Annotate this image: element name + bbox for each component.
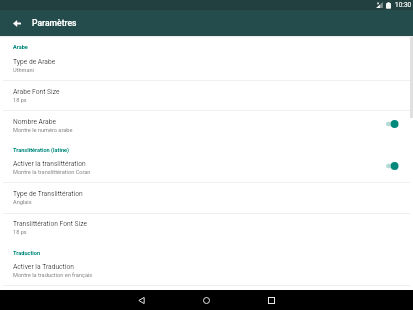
staticText: 18 px xyxy=(13,229,27,236)
button[interactable]: Type de Arabe xyxy=(0,51,413,81)
staticText: Arabe Font Size xyxy=(13,88,60,96)
staticText: Translittération Font Size xyxy=(13,220,87,228)
button[interactable]: Back xyxy=(119,290,164,310)
button[interactable]: Activer la Traduction xyxy=(0,256,413,286)
staticText: Activer la translittération xyxy=(13,160,86,168)
staticText: 10:30 xyxy=(395,1,412,9)
button[interactable]: Type de Translittération xyxy=(0,183,413,213)
staticText: 18 px xyxy=(13,97,27,104)
staticText: Paramètres xyxy=(32,18,77,28)
button[interactable]: Recent apps xyxy=(249,290,294,310)
staticText: Type de Arabe xyxy=(13,58,56,66)
staticText: Type de Translittération xyxy=(13,190,83,198)
staticText: Montre la traduction en français xyxy=(13,272,93,279)
staticText: Traduction xyxy=(13,250,41,257)
staticText: Montre le numéro arabe xyxy=(13,127,73,134)
button[interactable]: Arabe Font Size xyxy=(0,81,413,111)
button[interactable]: Translittération Font Size xyxy=(0,213,413,243)
staticText: Translitération (latine) xyxy=(13,147,70,154)
button[interactable]: Back xyxy=(4,10,30,36)
staticText: Uthmani xyxy=(13,67,34,74)
button[interactable]: Home xyxy=(184,290,229,310)
button[interactable]: Activer la translittération xyxy=(0,153,413,183)
staticText: Arabe xyxy=(13,44,28,51)
staticText: Montre la translittération Coran xyxy=(13,169,91,176)
button[interactable]: Nombre Arabe xyxy=(0,111,413,141)
staticText: Anglais xyxy=(13,199,32,206)
staticText: Nombre Arabe xyxy=(13,118,57,126)
staticText: Activer la Traduction xyxy=(13,263,74,271)
